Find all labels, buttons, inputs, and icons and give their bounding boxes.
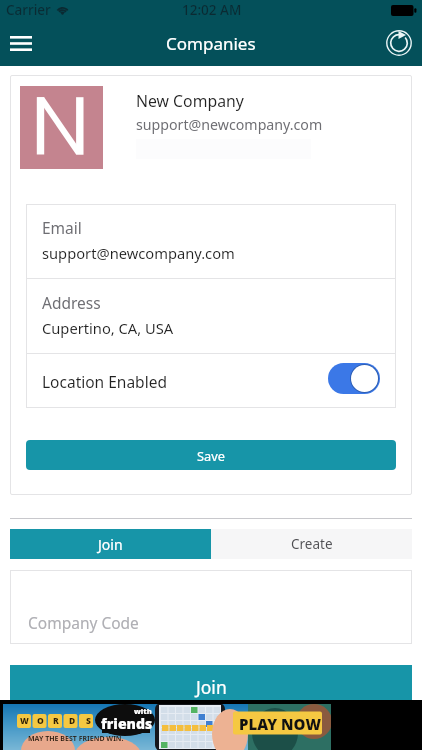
button[interactable]: Create: [211, 529, 412, 559]
button[interactable]: Join: [10, 529, 211, 559]
staticText: D: [69, 715, 76, 727]
button[interactable]: Refresh: [384, 28, 414, 58]
button[interactable]: Join: [10, 665, 412, 709]
staticText: R: [53, 715, 59, 727]
staticText: S: [86, 715, 91, 727]
staticText: Carrier: [6, 1, 51, 19]
staticText: Cupertino, CA, USA: [42, 318, 174, 338]
staticText: Email: [42, 217, 82, 238]
button[interactable]: Location Enabled: [26, 354, 396, 408]
staticText: Company Code: [28, 612, 139, 633]
staticText: with: [134, 706, 152, 716]
button[interactable]: Location Enabled toggle: [328, 363, 380, 394]
staticText: Companies: [166, 32, 256, 55]
staticText: friends: [101, 714, 153, 733]
staticText: Join: [196, 675, 227, 699]
staticText: support@newcompany.com: [42, 243, 235, 263]
button[interactable]: Menu: [6, 28, 36, 58]
staticText: W: [20, 715, 29, 727]
staticText: Create: [291, 535, 333, 553]
staticText: Address: [42, 292, 101, 313]
staticText: Save: [197, 447, 225, 464]
staticText: Location Enabled: [42, 371, 167, 392]
staticText: Join: [98, 535, 123, 554]
staticText: support@newcompany.com: [136, 115, 323, 134]
staticText: MAY THE BEST FRIEND WIN.: [28, 734, 124, 744]
staticText: PLAY NOW: [239, 714, 321, 734]
staticText: O: [37, 715, 44, 727]
staticText: New Company: [136, 90, 244, 112]
staticText: 12:02 AM: [182, 1, 242, 19]
button[interactable]: Company Code: [10, 570, 412, 644]
button[interactable]: Save: [26, 440, 396, 470]
